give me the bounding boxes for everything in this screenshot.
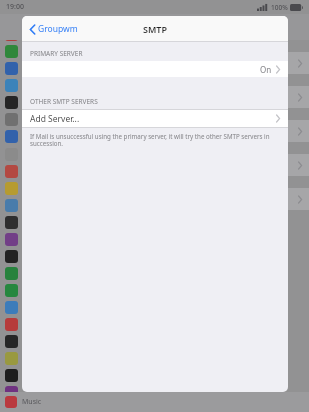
staticText: 100%: [271, 3, 288, 12]
staticText: SMTP: [143, 23, 167, 35]
staticText: 19:00: [6, 2, 24, 12]
button[interactable]: Groupwm: [28, 20, 80, 38]
button[interactable]: Add Server...: [22, 110, 288, 127]
staticText: Groupwm: [38, 23, 78, 35]
staticText: Music: [22, 397, 42, 407]
button[interactable]: On: [22, 61, 288, 77]
staticText: PRIMARY SERVER: [30, 49, 83, 58]
staticText: On: [260, 64, 272, 75]
staticText: Add Server...: [30, 113, 80, 125]
staticText: OTHER SMTP SERVERS: [30, 97, 98, 106]
staticText: If Mail is unsuccessful using the primar…: [30, 132, 270, 148]
